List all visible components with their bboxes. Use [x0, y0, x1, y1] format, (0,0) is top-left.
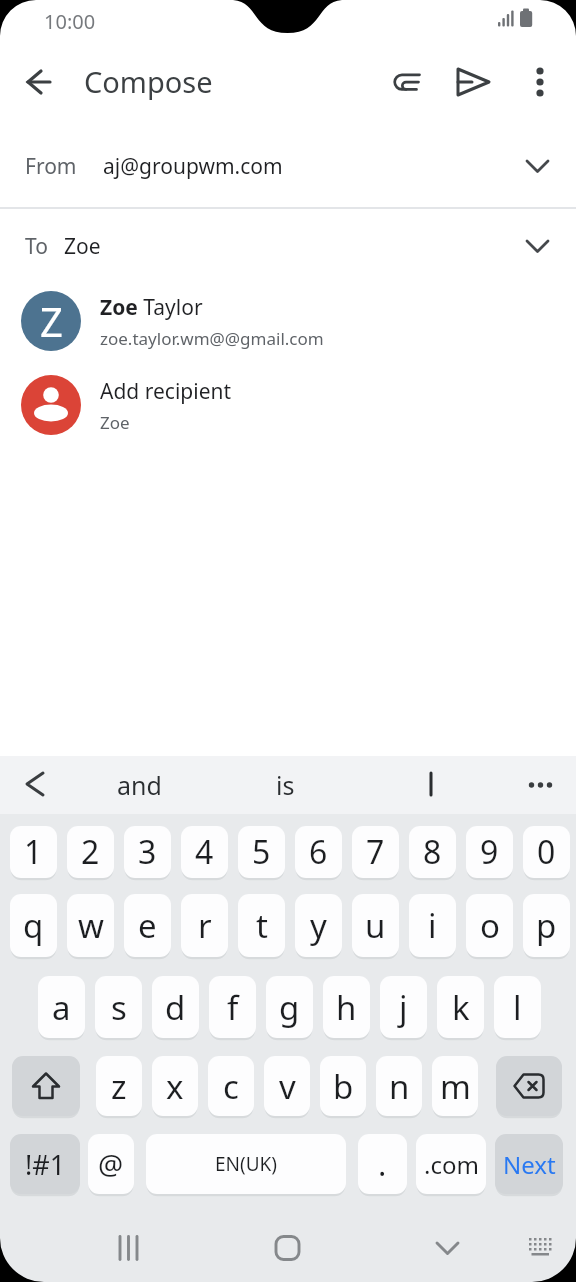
button[interactable] — [11, 761, 59, 809]
button[interactable]: o — [466, 894, 513, 957]
staticText: 8 — [423, 830, 442, 874]
button[interactable]: 2 — [67, 826, 114, 878]
button[interactable]: .com — [416, 1134, 486, 1194]
staticText: q — [23, 903, 44, 948]
button[interactable]: 6 — [295, 826, 342, 878]
staticText: o — [480, 903, 500, 948]
staticText: c — [223, 1064, 239, 1109]
button[interactable] — [384, 58, 432, 106]
button[interactable]: 1 — [10, 826, 57, 878]
staticText: zoe.taylor.wm@@gmail.com — [100, 327, 324, 350]
staticText: EN(UK) — [215, 1151, 278, 1177]
staticText: n — [389, 1064, 410, 1109]
button[interactable]: x — [152, 1056, 198, 1116]
button[interactable]: Z — [0, 283, 576, 359]
staticText: f — [227, 985, 239, 1030]
button[interactable] — [450, 58, 498, 106]
staticText: . — [378, 1143, 387, 1185]
staticText: 7 — [366, 830, 385, 874]
button[interactable]: q — [10, 894, 57, 957]
button[interactable]: 3 — [124, 826, 171, 878]
staticText: .com — [424, 1148, 479, 1181]
button[interactable]: z — [96, 1056, 142, 1116]
button[interactable]: . — [358, 1134, 407, 1194]
staticText: w — [78, 903, 104, 948]
staticText: From — [25, 152, 77, 181]
button[interactable]: To — [0, 209, 576, 283]
staticText: 9 — [480, 830, 499, 874]
staticText: e — [138, 903, 157, 948]
button[interactable]: s — [95, 976, 142, 1038]
button[interactable]: d — [152, 976, 199, 1038]
button[interactable]: p — [523, 894, 570, 957]
staticText: 4 — [195, 830, 214, 874]
staticText: 5 — [252, 830, 271, 874]
button[interactable]: 4 — [181, 826, 228, 878]
button[interactable]: 0 — [523, 826, 570, 878]
button[interactable]: From — [0, 125, 576, 207]
button[interactable]: h — [323, 976, 370, 1038]
button[interactable]: r — [181, 894, 228, 957]
button[interactable]: m — [432, 1056, 478, 1116]
staticText: k — [452, 985, 470, 1030]
staticText: Zoe Taylor — [100, 293, 203, 322]
button[interactable]: @ — [88, 1134, 134, 1194]
button[interactable]: g — [266, 976, 313, 1038]
staticText: 10:00 — [44, 8, 96, 35]
staticText: Compose — [84, 62, 213, 101]
button[interactable]: t — [238, 894, 285, 957]
button[interactable]: EN(UK) — [146, 1134, 346, 1194]
staticText: l — [513, 985, 522, 1030]
staticText: Zoe — [64, 232, 101, 261]
staticText: 0 — [537, 830, 556, 874]
button[interactable]: a — [38, 976, 85, 1038]
staticText: g — [279, 985, 300, 1030]
staticText: d — [165, 985, 186, 1030]
staticText: aj@groupwm.com — [103, 152, 283, 181]
staticText: b — [333, 1064, 354, 1109]
staticText: m — [440, 1064, 471, 1109]
button[interactable]: i — [409, 894, 456, 957]
staticText: To — [25, 232, 48, 261]
button[interactable]: 8 — [409, 826, 456, 878]
button[interactable]: e — [124, 894, 171, 957]
button[interactable]: w — [67, 894, 114, 957]
button[interactable]: 9 — [466, 826, 513, 878]
button[interactable] — [516, 58, 564, 106]
button[interactable] — [496, 1056, 562, 1116]
staticText: v — [279, 1064, 296, 1109]
button[interactable]: b — [320, 1056, 366, 1116]
button[interactable]: Next — [495, 1134, 563, 1194]
button[interactable]: c — [208, 1056, 254, 1116]
button[interactable]: v — [264, 1056, 310, 1116]
staticText: u — [365, 903, 386, 948]
staticText: 3 — [138, 830, 157, 874]
staticText: a — [52, 985, 71, 1030]
button[interactable]: u — [352, 894, 399, 957]
button[interactable]: 7 — [352, 826, 399, 878]
staticText: t — [256, 903, 268, 948]
button[interactable]: !#1 — [10, 1134, 80, 1194]
staticText: !#1 — [25, 1146, 66, 1183]
staticText: Zoe — [100, 411, 130, 434]
button[interactable] — [12, 1056, 80, 1116]
button[interactable]: 5 — [238, 826, 285, 878]
button[interactable]: k — [437, 976, 484, 1038]
staticText: Next — [503, 1148, 556, 1181]
staticText: is — [276, 768, 295, 802]
button[interactable]: j — [380, 976, 427, 1038]
button[interactable]: Add recipient — [0, 367, 576, 443]
button[interactable]: y — [295, 894, 342, 957]
staticText: @ — [98, 1145, 124, 1183]
button[interactable]: n — [376, 1056, 422, 1116]
staticText: 6 — [309, 830, 328, 874]
staticText: h — [336, 985, 357, 1030]
staticText: z — [111, 1064, 127, 1109]
staticText: i — [428, 903, 437, 948]
staticText: Z — [40, 294, 63, 348]
button[interactable]: f — [209, 976, 256, 1038]
staticText: j — [399, 985, 408, 1030]
button[interactable] — [15, 58, 63, 106]
button[interactable]: l — [494, 976, 541, 1038]
staticText: 2 — [81, 830, 100, 874]
